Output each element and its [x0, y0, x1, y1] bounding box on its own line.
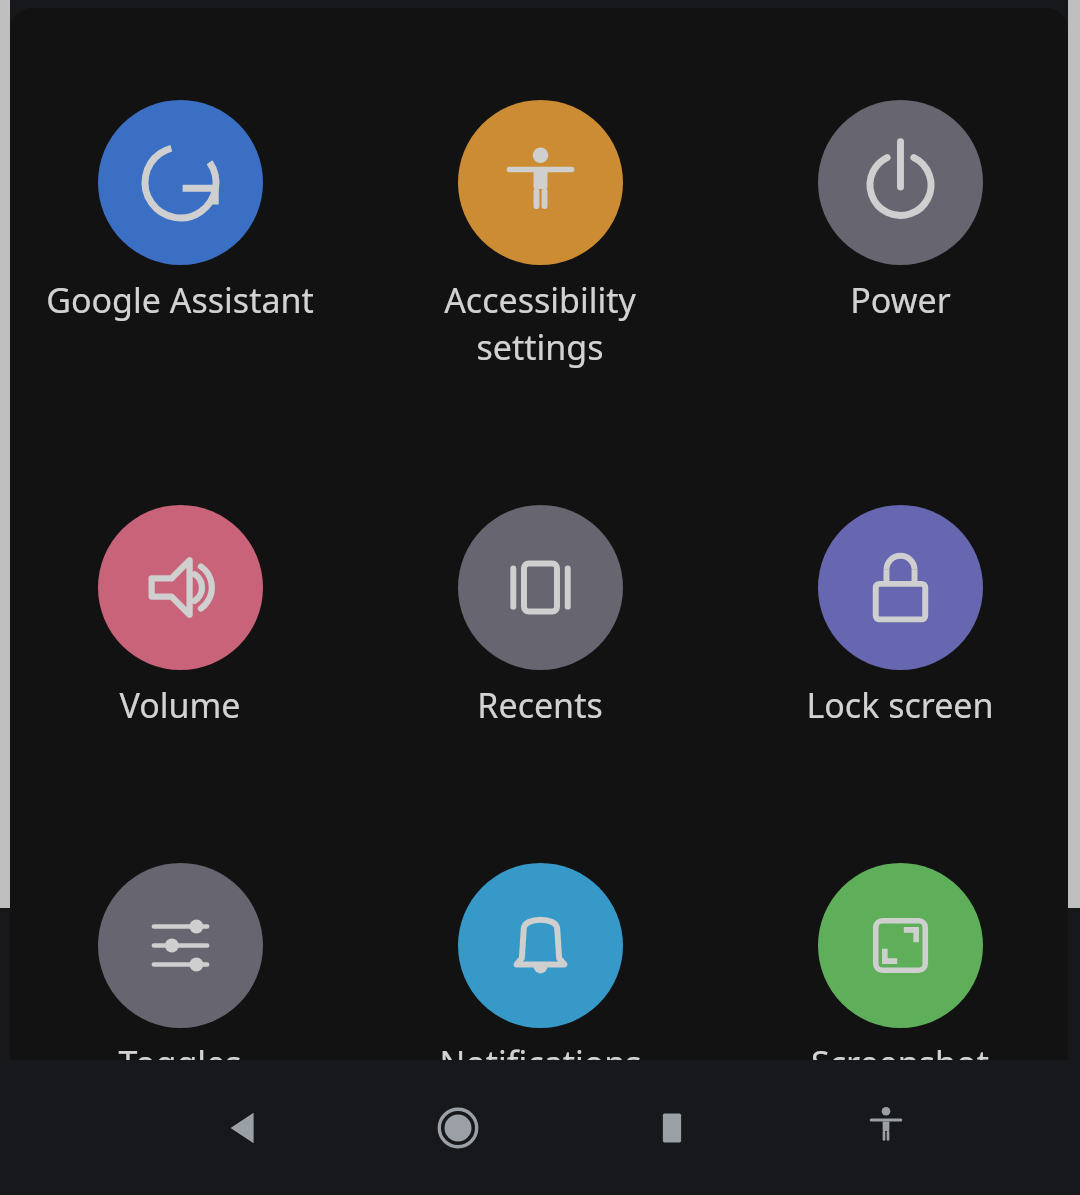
button[interactable]: Screenshot	[720, 863, 1080, 1086]
button[interactable]: Power	[720, 100, 1080, 323]
staticText: Volume	[119, 682, 241, 728]
button[interactable]: Recent apps	[624, 1080, 720, 1176]
staticText: Notifications	[439, 1040, 642, 1086]
button[interactable]: Toggles	[0, 863, 360, 1086]
button[interactable]: Recents	[360, 505, 720, 728]
staticText: Accessibility settings	[444, 277, 636, 370]
button[interactable]: Home	[410, 1080, 506, 1176]
button[interactable]: Accessibility	[838, 1080, 934, 1176]
button[interactable]: Lock screen	[720, 505, 1080, 728]
staticText: Toggles	[118, 1040, 242, 1086]
staticText: Recents	[477, 682, 603, 728]
staticText: Screenshot	[811, 1040, 989, 1086]
button[interactable]: Volume	[0, 505, 360, 728]
button[interactable]: Google Assistant	[0, 100, 360, 323]
staticText: Lock screen	[806, 682, 994, 728]
button[interactable]: Back	[196, 1080, 292, 1176]
staticText: Power	[850, 277, 951, 323]
staticText: Google Assistant	[46, 277, 314, 323]
button[interactable]: Notifications	[360, 863, 720, 1086]
button[interactable]: Accessibility settings	[360, 100, 720, 370]
